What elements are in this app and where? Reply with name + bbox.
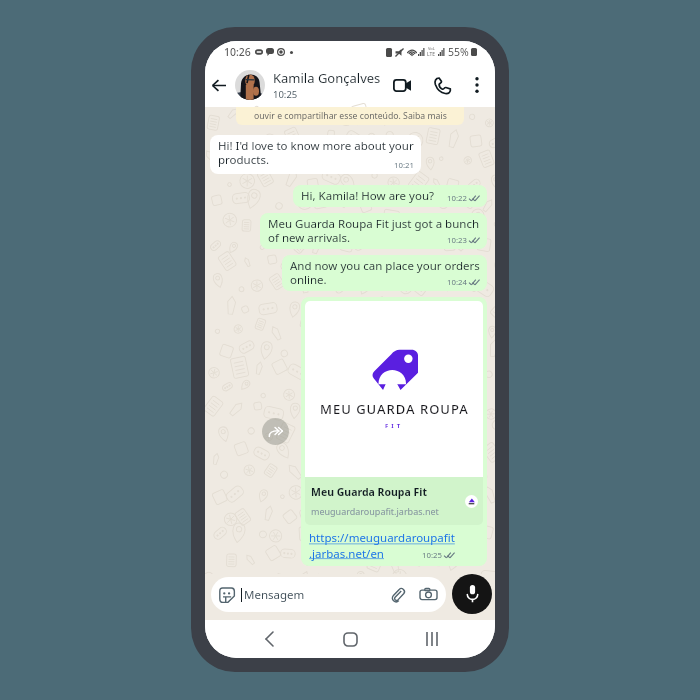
staticText: 10:26 [224,45,251,59]
staticText: FIT [385,422,404,430]
staticText: MEU GUARDA ROUPA [320,400,469,418]
button[interactable]: Voice call [428,71,456,99]
button[interactable]: Hi, Kamila! How are you? [293,185,487,207]
staticText: Kamila Gonçalves [273,69,381,87]
button[interactable]: Mensagem [211,577,446,612]
button[interactable]: Hi! I'd love to know more about your pro… [210,135,421,174]
staticText: LTE [427,51,436,58]
button[interactable]: More options [465,73,489,97]
button[interactable]: Home [333,622,367,656]
staticText: 10:25 [273,88,298,101]
button[interactable]: And now you can place your orders online… [282,255,487,291]
staticText: 10:25 [422,550,442,561]
staticText: meuguardaroupafit.jarbas.net [311,505,439,517]
button[interactable]: Back [205,71,233,99]
staticText: 10:23 [447,235,467,246]
staticText: online. [290,258,327,274]
staticText: Meu Guarda Roupa Fit just got a bunch of… [268,216,480,246]
button[interactable]: Attach [389,586,406,603]
staticText: 10:22 [447,193,467,204]
staticText: .jarbas.net/en [309,530,384,546]
button[interactable]: Video call [388,71,416,99]
staticText: of new arrivals. [268,216,351,232]
staticText: 10:21 [394,160,414,171]
button[interactable]: Forward [262,418,289,445]
staticText: products. [218,138,269,154]
button[interactable]: Back [252,622,286,656]
button[interactable]: ouvir e compartilhar esse conteúdo. Saib… [236,107,464,125]
button[interactable]: Meu Guarda Roupa Fit just got a bunch of… [260,213,487,249]
staticText: 55% [448,45,469,59]
staticText: https://meuguardaroupafit .jarbas.net/en [309,530,455,561]
staticText: 10:24 [447,277,467,288]
button[interactable]: Record voice message [452,574,492,614]
staticText: Hi, Kamila! How are you? [301,188,434,204]
staticText: Meu Guarda Roupa Fit [311,485,427,499]
staticText: Hi! I'd love to know more about your pro… [218,138,414,168]
staticText: ouvir e compartilhar esse conteúdo. Saib… [254,110,447,122]
staticText: Hi, Kamila! How are you? [301,188,434,204]
button[interactable]: Camera [420,586,437,603]
staticText: And now you can place your orders online… [290,258,480,288]
staticText: Mensagem [244,587,305,603]
staticText: VoL [428,46,435,51]
button[interactable]: MEU GUARDA ROUPA [301,297,487,566]
button[interactable]: Recents [414,622,448,656]
